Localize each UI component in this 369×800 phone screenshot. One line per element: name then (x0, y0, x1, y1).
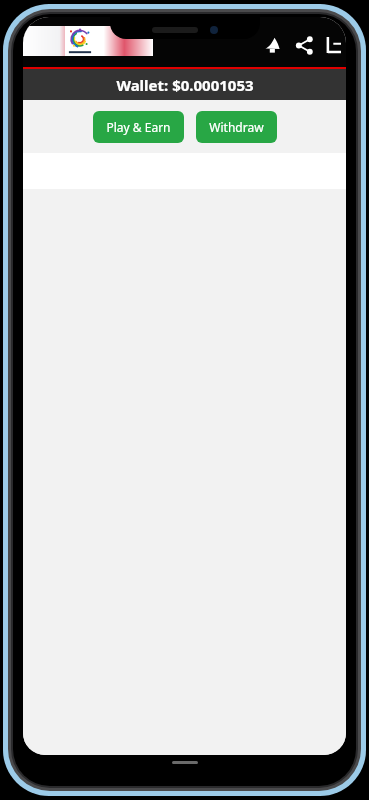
button[interactable]: Share (288, 29, 320, 61)
button[interactable]: Play & Earn (93, 111, 184, 143)
button[interactable]: More (320, 32, 346, 58)
button[interactable]: Withdraw (196, 111, 277, 143)
button[interactable]: Wallet: $0.0001053 (23, 69, 346, 100)
button[interactable]: Home logo (23, 26, 153, 56)
staticText: Withdraw (209, 119, 264, 135)
staticText: Play & Earn (106, 119, 171, 135)
button[interactable]: Notifications (256, 29, 288, 61)
staticText: Wallet: $0.0001053 (116, 75, 254, 95)
